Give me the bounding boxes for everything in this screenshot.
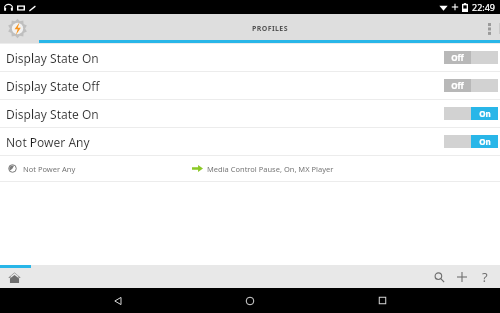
button[interactable]: Add: [452, 267, 472, 287]
button[interactable]: Recent apps: [368, 288, 396, 313]
button[interactable]: Home: [4, 267, 24, 287]
staticText: Not Power Any: [23, 164, 76, 174]
button[interactable]: Back: [104, 288, 132, 313]
button[interactable]: Display State Off: [0, 71, 500, 99]
button[interactable]: Search: [429, 267, 449, 287]
button[interactable]: More options: [478, 14, 500, 43]
staticText: 22:49: [472, 1, 496, 13]
button[interactable]: Display State On: [0, 99, 500, 127]
staticText: Off: [451, 52, 464, 63]
button[interactable]: Help: [475, 267, 495, 287]
staticText: Off: [451, 80, 464, 91]
button[interactable]: On: [444, 135, 498, 148]
staticText: On: [479, 136, 491, 147]
staticText: PROFILES: [252, 24, 288, 34]
staticText: On: [479, 108, 491, 119]
button[interactable]: Off: [444, 51, 498, 64]
button[interactable]: Not Power Any: [0, 155, 500, 181]
staticText: Display State Off: [6, 78, 100, 94]
staticText: ?: [482, 268, 488, 286]
staticText: Not Power Any: [6, 134, 90, 150]
button[interactable]: Not Power Any: [0, 127, 500, 155]
staticText: Display State On: [6, 106, 99, 122]
button[interactable]: Off: [444, 79, 498, 92]
staticText: Display State On: [6, 50, 99, 66]
staticText: Media Control Pause, On, MX Player: [207, 164, 334, 174]
button[interactable]: On: [444, 107, 498, 120]
button[interactable]: Display State On: [0, 43, 500, 71]
button[interactable]: PROFILES: [39, 14, 500, 43]
button[interactable]: Home: [236, 288, 264, 313]
